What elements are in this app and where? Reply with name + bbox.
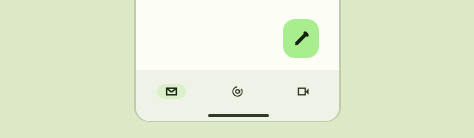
button[interactable]: Mail — [139, 76, 204, 106]
button[interactable]: Compose — [283, 19, 319, 58]
button[interactable]: Mentions — [204, 76, 270, 106]
button[interactable]: Meet — [270, 76, 336, 106]
